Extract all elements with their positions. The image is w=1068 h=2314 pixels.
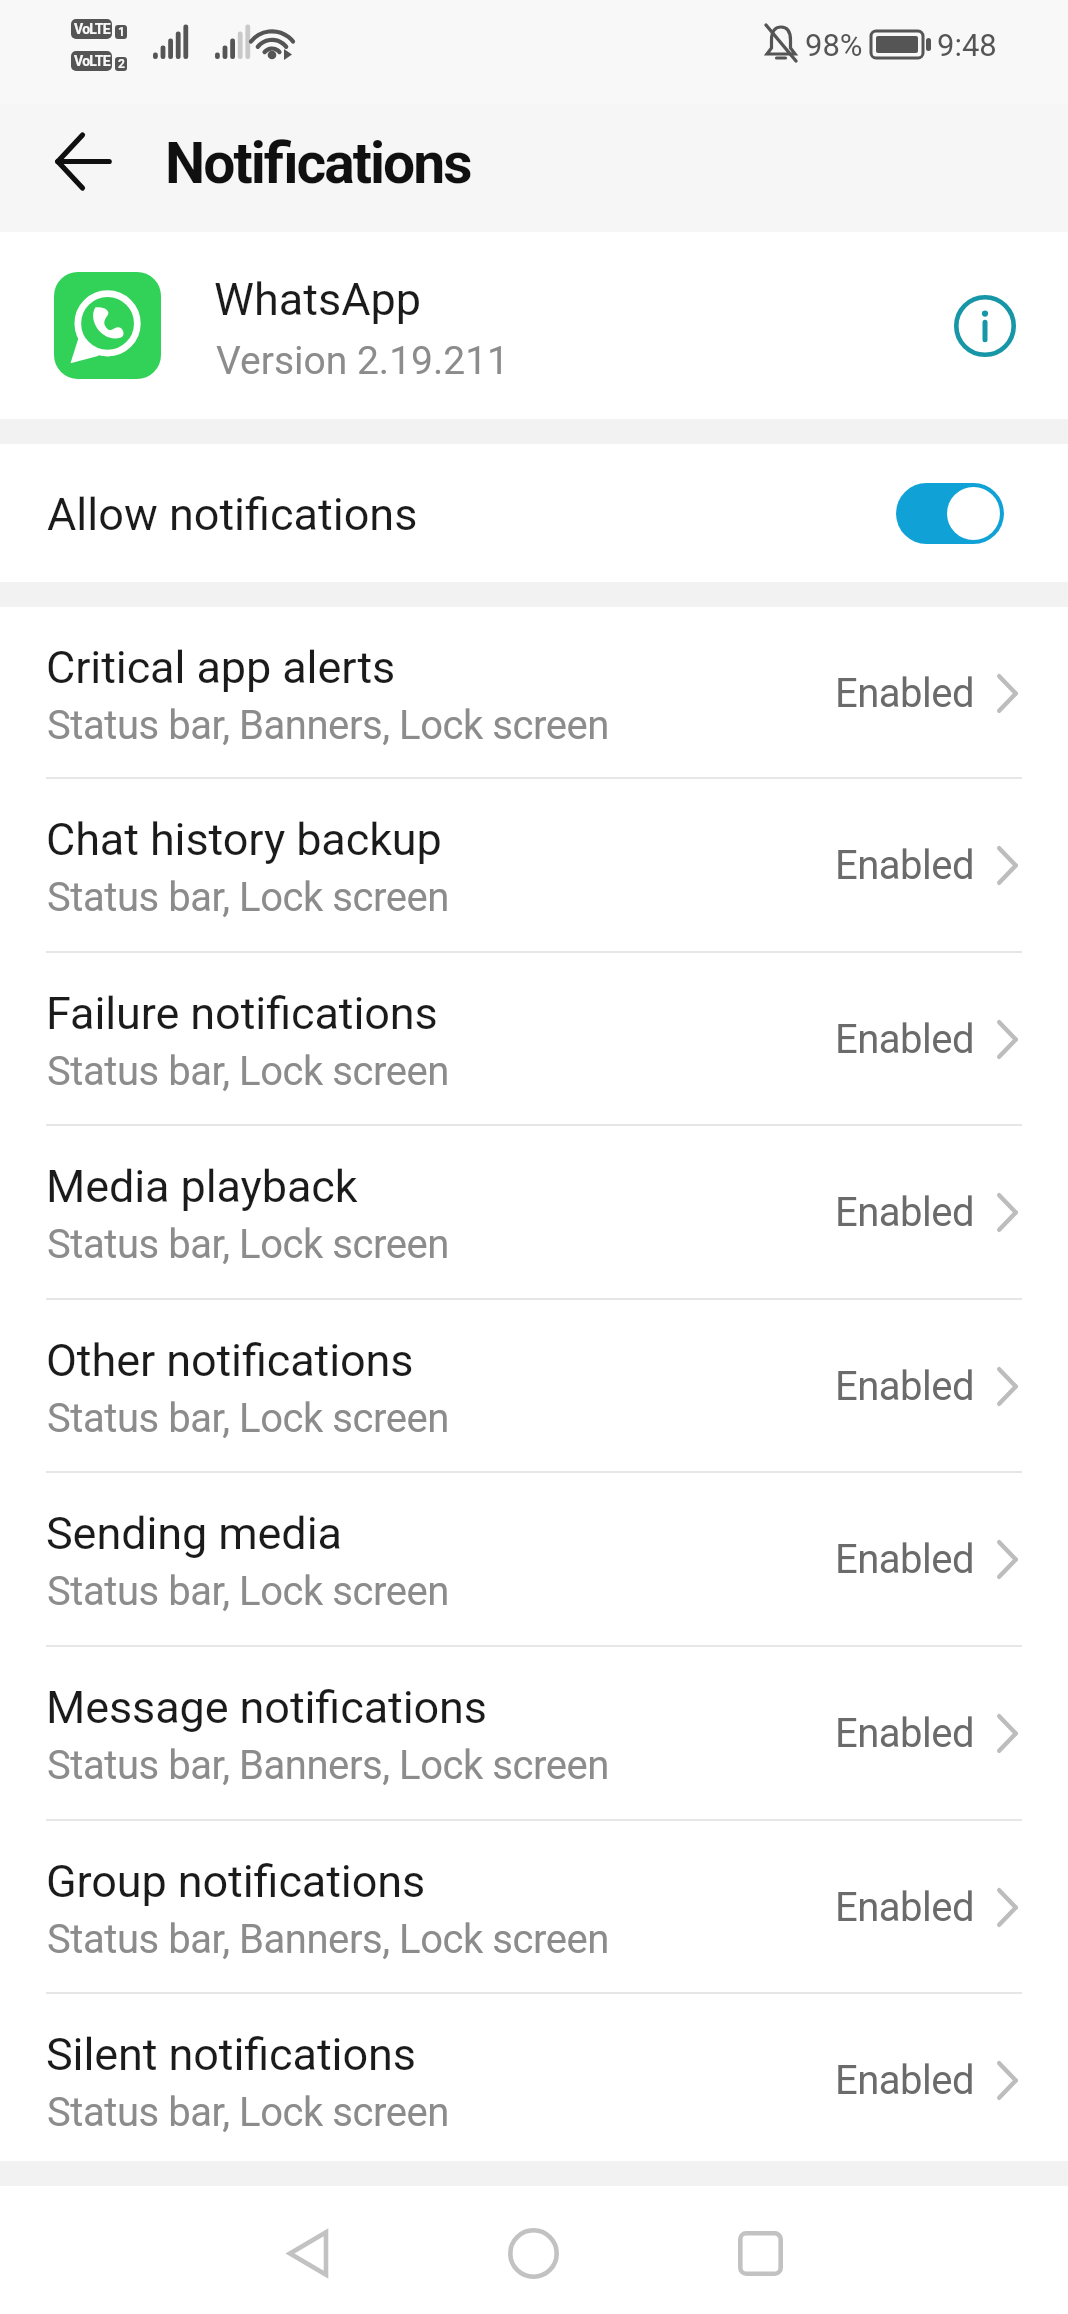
button[interactable]: Chat history backup bbox=[0, 779, 1068, 953]
staticText: Enabled bbox=[835, 1710, 975, 1757]
button[interactable]: Sending media bbox=[0, 1473, 1068, 1647]
staticText: 2 bbox=[118, 57, 125, 71]
staticText: Enabled bbox=[835, 1884, 975, 1931]
staticText: Group notifications bbox=[46, 1855, 426, 1908]
button[interactable]: App info bbox=[940, 281, 1030, 371]
staticText: Status bar, Lock screen bbox=[47, 2089, 449, 2136]
button[interactable]: Recents bbox=[690, 2189, 830, 2314]
staticText: VoLTE bbox=[74, 53, 110, 69]
button[interactable]: Other notifications bbox=[0, 1300, 1068, 1473]
staticText: Sending media bbox=[46, 1507, 342, 1560]
staticText: Version 2.19.211 bbox=[216, 338, 510, 384]
staticText: VoLTE bbox=[74, 21, 110, 37]
staticText: Enabled bbox=[835, 670, 975, 717]
staticText: Allow notifications bbox=[47, 488, 418, 541]
staticText: Enabled bbox=[835, 2057, 975, 2104]
staticText: Enabled bbox=[835, 1363, 975, 1410]
staticText: Status bar, Lock screen bbox=[47, 874, 449, 921]
staticText: Status bar, Banners, Lock screen bbox=[47, 1742, 609, 1789]
button[interactable]: Allow notifications bbox=[0, 444, 1068, 582]
staticText: Enabled bbox=[835, 1016, 975, 1063]
button[interactable]: WhatsApp bbox=[0, 232, 1068, 419]
staticText: Silent notifications bbox=[46, 2028, 416, 2081]
staticText: 1 bbox=[118, 25, 125, 39]
staticText: Status bar, Lock screen bbox=[47, 1568, 449, 1615]
staticText: Status bar, Lock screen bbox=[47, 1048, 449, 1095]
staticText: Other notifications bbox=[46, 1334, 414, 1387]
staticText: Enabled bbox=[835, 842, 975, 889]
staticText: Chat history backup bbox=[46, 813, 442, 866]
staticText: Enabled bbox=[835, 1536, 975, 1583]
staticText: Status bar, Banners, Lock screen bbox=[47, 702, 609, 749]
button[interactable]: Allow notifications bbox=[896, 483, 1004, 544]
button[interactable]: Media playback bbox=[0, 1126, 1068, 1300]
staticText: Notifications bbox=[165, 130, 471, 197]
button[interactable]: Back bbox=[238, 2189, 378, 2314]
button[interactable]: Critical app alerts bbox=[0, 607, 1068, 779]
staticText: Status bar, Lock screen bbox=[47, 1221, 449, 1268]
staticText: Message notifications bbox=[46, 1681, 487, 1734]
staticText: Media playback bbox=[46, 1160, 358, 1213]
button[interactable]: Silent notifications bbox=[0, 1994, 1068, 2160]
staticText: 98% bbox=[805, 27, 863, 63]
button[interactable]: Message notifications bbox=[0, 1647, 1068, 1821]
staticText: Critical app alerts bbox=[46, 641, 396, 694]
button[interactable]: Back bbox=[28, 106, 138, 216]
button[interactable]: Home bbox=[463, 2189, 603, 2314]
staticText: 9:48 bbox=[937, 27, 997, 63]
staticText: Status bar, Lock screen bbox=[47, 1395, 449, 1442]
button[interactable]: Group notifications bbox=[0, 1821, 1068, 1994]
staticText: Enabled bbox=[835, 1189, 975, 1236]
staticText: WhatsApp bbox=[214, 273, 422, 326]
staticText: Failure notifications bbox=[46, 987, 438, 1040]
staticText: Status bar, Banners, Lock screen bbox=[47, 1916, 609, 1963]
button[interactable]: Failure notifications bbox=[0, 953, 1068, 1126]
